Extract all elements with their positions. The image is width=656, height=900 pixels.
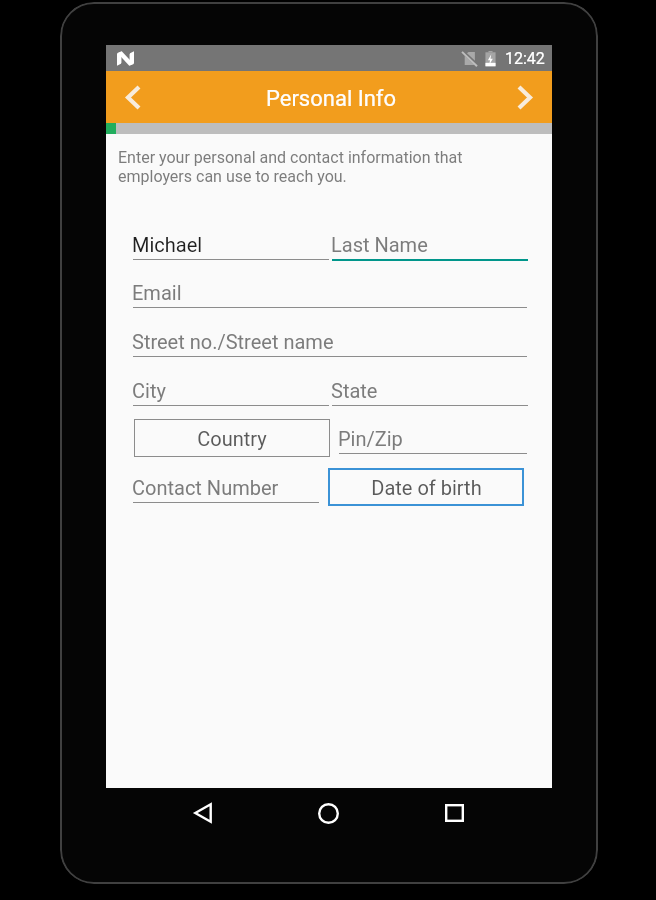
staticText: State	[331, 379, 378, 402]
button[interactable]: Recents	[394, 788, 514, 838]
button[interactable]: Date of birth	[328, 468, 524, 506]
button[interactable]: Last Name	[332, 229, 528, 261]
staticText: City	[132, 379, 166, 402]
button[interactable]: Street no./Street name	[133, 326, 527, 357]
button[interactable]: Pin/Zip	[339, 423, 527, 454]
button[interactable]: Michael	[133, 229, 329, 260]
staticText: Country	[197, 427, 267, 450]
staticText: Personal Info	[266, 86, 397, 112]
staticText: Pin/Zip	[338, 427, 403, 450]
staticText: Contact Number	[132, 476, 279, 499]
button[interactable]: Email	[133, 277, 527, 308]
button[interactable]: City	[133, 375, 329, 406]
button[interactable]: Previous	[111, 75, 155, 119]
button[interactable]: Country	[134, 419, 330, 457]
staticText: Street no./Street name	[132, 330, 334, 353]
button[interactable]: Home	[268, 788, 388, 838]
staticText: Enter your personal and contact informat…	[118, 148, 463, 186]
button[interactable]: Contact Number	[133, 472, 319, 503]
staticText: Email	[132, 281, 182, 304]
staticText: Date of birth	[371, 476, 482, 499]
button[interactable]: Next	[502, 75, 546, 119]
staticText: Michael	[132, 233, 203, 256]
staticText: 12:42	[505, 49, 545, 68]
button[interactable]: Back	[143, 788, 263, 838]
staticText: Last Name	[331, 233, 428, 256]
button[interactable]: State	[332, 375, 528, 406]
